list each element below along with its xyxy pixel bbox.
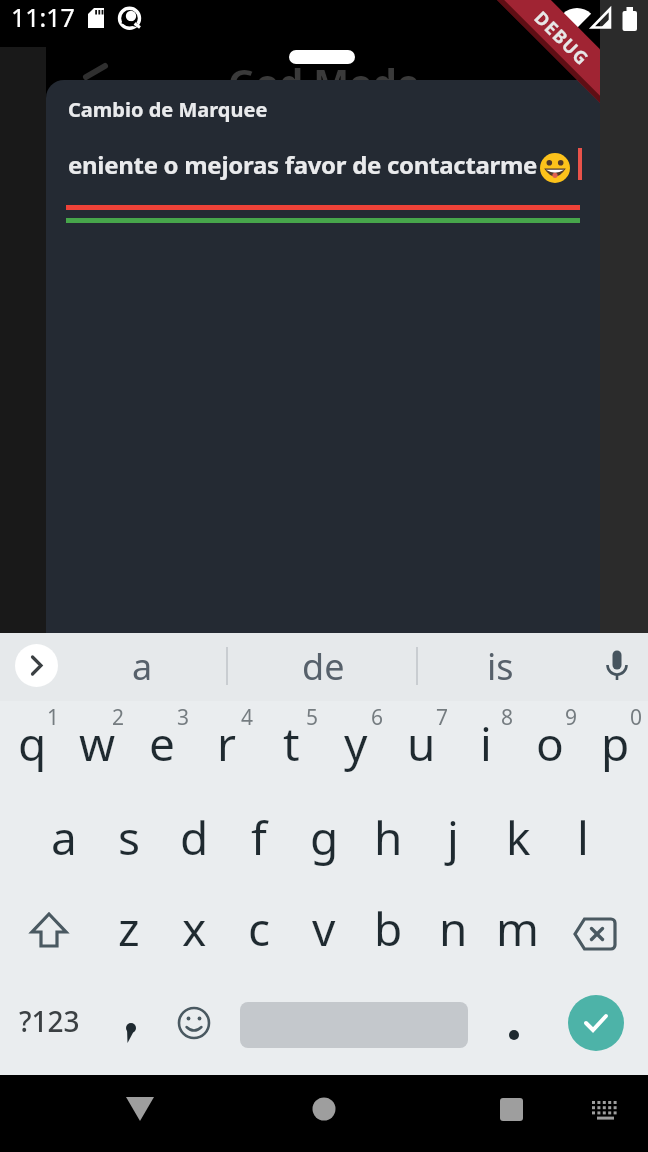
button[interactable]: [112, 1076, 168, 1132]
staticText: 6: [371, 703, 384, 727]
staticText: q: [18, 712, 47, 775]
button[interactable]: [296, 1076, 352, 1132]
staticText: k: [506, 806, 531, 869]
button[interactable]: a: [32, 805, 96, 869]
staticText: i: [480, 712, 492, 775]
staticText: God Mode: [228, 56, 420, 102]
staticText: de: [302, 642, 345, 682]
staticText: eniente o mejoras favor de contactarme: [68, 148, 544, 181]
staticText: Cambio de Marquee: [68, 96, 268, 123]
button[interactable]: j: [421, 805, 485, 869]
staticText: o: [536, 712, 564, 775]
button[interactable]: p: [583, 711, 647, 775]
button[interactable]: f: [227, 805, 291, 869]
button[interactable]: h: [356, 805, 420, 869]
staticText: l: [577, 806, 589, 869]
button[interactable]: [482, 993, 546, 1053]
staticText: d: [180, 806, 209, 869]
staticText: p: [601, 712, 630, 775]
staticText: 8: [501, 703, 514, 727]
staticText: 7: [436, 703, 449, 727]
button[interactable]: y: [324, 711, 388, 775]
button[interactable]: [17, 902, 81, 962]
staticText: 1: [47, 703, 60, 727]
button[interactable]: q: [0, 711, 64, 775]
staticText: y: [344, 712, 368, 775]
button[interactable]: v: [292, 896, 356, 960]
staticText: h: [374, 806, 403, 869]
staticText: c: [248, 897, 271, 960]
button[interactable]: c: [227, 896, 291, 960]
button[interactable]: o: [518, 711, 582, 775]
staticText: n: [439, 897, 468, 960]
staticText: 0: [630, 703, 643, 727]
button[interactable]: [98, 993, 162, 1053]
staticText: w: [79, 712, 116, 775]
button[interactable]: i: [454, 711, 518, 775]
staticText: u: [407, 712, 436, 775]
staticText: j: [447, 806, 459, 869]
staticText: 4: [241, 703, 254, 727]
staticText: DEBUG: [529, 5, 595, 71]
staticText: b: [374, 897, 403, 960]
button[interactable]: m: [486, 896, 550, 960]
button[interactable]: [580, 1083, 630, 1133]
button[interactable]: e: [130, 711, 194, 775]
staticText: is: [487, 642, 514, 682]
staticText: 11:17: [11, 0, 75, 34]
staticText: 5: [306, 703, 319, 727]
button[interactable]: is: [460, 642, 540, 682]
button[interactable]: [162, 993, 226, 1053]
staticText: x: [182, 897, 207, 960]
button[interactable]: ?123: [14, 991, 84, 1051]
staticText: 9: [565, 703, 578, 727]
staticText: ?123: [19, 1002, 80, 1040]
button[interactable]: b: [356, 896, 420, 960]
button[interactable]: t: [259, 711, 323, 775]
button[interactable]: x: [162, 896, 226, 960]
button[interactable]: n: [421, 896, 485, 960]
staticText: t: [283, 712, 300, 775]
button[interactable]: z: [97, 896, 161, 960]
button[interactable]: d: [162, 805, 226, 869]
staticText: a: [132, 642, 153, 682]
staticText: s: [118, 806, 141, 869]
button[interactable]: r: [194, 711, 258, 775]
staticText: a: [51, 806, 77, 869]
staticText: z: [118, 897, 140, 960]
button[interactable]: [568, 995, 624, 1051]
button[interactable]: de: [283, 642, 363, 682]
staticText: g: [310, 806, 339, 869]
button[interactable]: [15, 644, 58, 687]
button[interactable]: [483, 1076, 539, 1132]
staticText: v: [312, 897, 336, 960]
staticText: f: [251, 806, 267, 869]
staticText: e: [149, 712, 175, 775]
button[interactable]: u: [389, 711, 453, 775]
button[interactable]: l: [551, 805, 615, 869]
button[interactable]: [566, 902, 630, 962]
staticText: 2: [112, 703, 125, 727]
button[interactable]: s: [97, 805, 161, 869]
button[interactable]: w: [65, 711, 129, 775]
staticText: 3: [177, 703, 190, 727]
staticText: m: [496, 897, 540, 960]
button[interactable]: k: [486, 805, 550, 869]
staticText: r: [217, 712, 236, 775]
button[interactable]: g: [292, 805, 356, 869]
button[interactable]: a: [102, 642, 182, 682]
